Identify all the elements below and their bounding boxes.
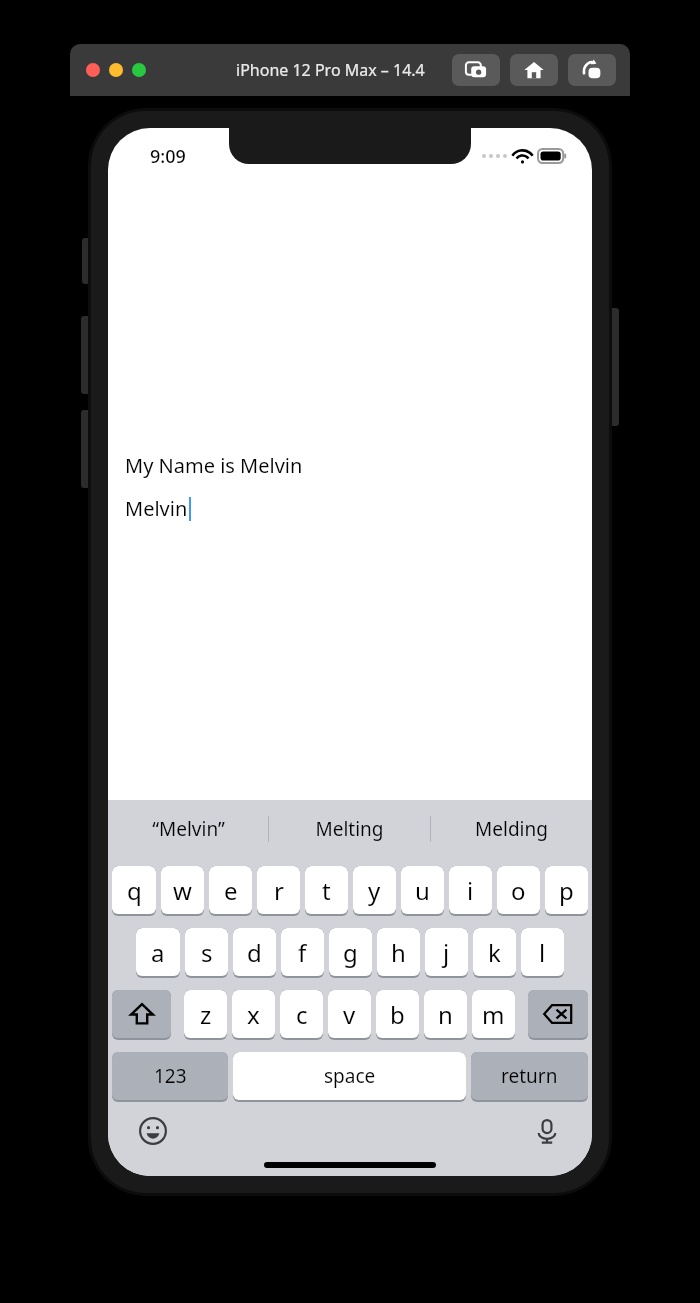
staticText: Melvin <box>125 495 188 522</box>
staticText: Melting <box>315 816 384 842</box>
button[interactable]: Minimize <box>109 63 123 77</box>
staticText: n <box>438 998 453 1031</box>
button[interactable]: n <box>424 990 467 1038</box>
staticText: space <box>324 1063 376 1089</box>
staticText: o <box>511 874 526 907</box>
button[interactable]: Close <box>86 63 100 77</box>
button[interactable]: k <box>473 928 516 976</box>
staticText: 9:09 <box>150 144 186 169</box>
staticText: w <box>173 874 192 907</box>
button[interactable]: Melding <box>431 800 592 858</box>
staticText: z <box>200 998 212 1031</box>
button[interactable]: p <box>545 866 588 914</box>
staticText: f <box>298 936 307 969</box>
staticText: u <box>415 874 430 907</box>
button[interactable]: Dictation <box>530 1114 564 1148</box>
staticText: d <box>247 936 262 969</box>
button[interactable]: a <box>136 928 180 976</box>
button[interactable]: return <box>471 1052 588 1100</box>
button[interactable]: t <box>305 866 348 914</box>
staticText: q <box>127 874 142 907</box>
staticText: 123 <box>154 1063 187 1089</box>
staticText: l <box>539 936 546 969</box>
button[interactable]: “Melvin” <box>108 800 268 858</box>
button[interactable]: i <box>449 866 492 914</box>
staticText: iPhone 12 Pro Max – 14.4 <box>236 59 425 81</box>
button[interactable]: Backspace <box>528 990 588 1038</box>
staticText: e <box>224 874 238 907</box>
button[interactable]: Shift <box>112 990 171 1038</box>
staticText: Melding <box>475 816 548 842</box>
button[interactable]: h <box>377 928 420 976</box>
button[interactable]: y <box>353 866 396 914</box>
button[interactable]: v <box>328 990 371 1038</box>
button[interactable]: Zoom <box>132 63 146 77</box>
staticText: return <box>501 1063 558 1089</box>
button[interactable]: z <box>184 990 227 1038</box>
staticText: v <box>343 998 356 1031</box>
staticText: s <box>201 936 213 969</box>
staticText: i <box>467 874 474 907</box>
staticText: c <box>296 998 308 1031</box>
button[interactable]: g <box>329 928 372 976</box>
button[interactable]: Emoji <box>136 1114 170 1148</box>
button[interactable]: Rotate <box>568 54 616 86</box>
button[interactable]: s <box>185 928 228 976</box>
button[interactable]: e <box>209 866 252 914</box>
staticText: j <box>443 936 450 969</box>
button[interactable]: Home <box>510 54 558 86</box>
staticText: y <box>368 874 381 907</box>
button[interactable]: u <box>401 866 444 914</box>
staticText: b <box>390 998 405 1031</box>
button[interactable]: o <box>497 866 540 914</box>
staticText: g <box>343 936 358 969</box>
staticText: p <box>559 874 574 907</box>
button[interactable]: space <box>233 1052 466 1100</box>
button[interactable]: f <box>281 928 324 976</box>
button[interactable]: c <box>280 990 323 1038</box>
staticText: “Melvin” <box>152 816 225 842</box>
button[interactable]: b <box>376 990 419 1038</box>
staticText: k <box>488 936 501 969</box>
staticText: x <box>247 998 260 1031</box>
button[interactable]: d <box>233 928 276 976</box>
button[interactable]: m <box>472 990 515 1038</box>
staticText: m <box>482 998 505 1031</box>
button[interactable]: Screenshot <box>452 54 500 86</box>
button[interactable]: 123 <box>112 1052 228 1100</box>
button[interactable]: w <box>161 866 204 914</box>
button[interactable]: r <box>257 866 300 914</box>
button[interactable]: l <box>521 928 564 976</box>
staticText: r <box>274 874 284 907</box>
staticText: t <box>322 874 331 907</box>
staticText: h <box>391 936 406 969</box>
button[interactable]: q <box>112 866 156 914</box>
button[interactable]: Melting <box>269 800 430 858</box>
staticText: a <box>151 936 165 969</box>
staticText: My Name is Melvin <box>125 452 303 479</box>
button[interactable]: x <box>232 990 275 1038</box>
button[interactable]: j <box>425 928 468 976</box>
